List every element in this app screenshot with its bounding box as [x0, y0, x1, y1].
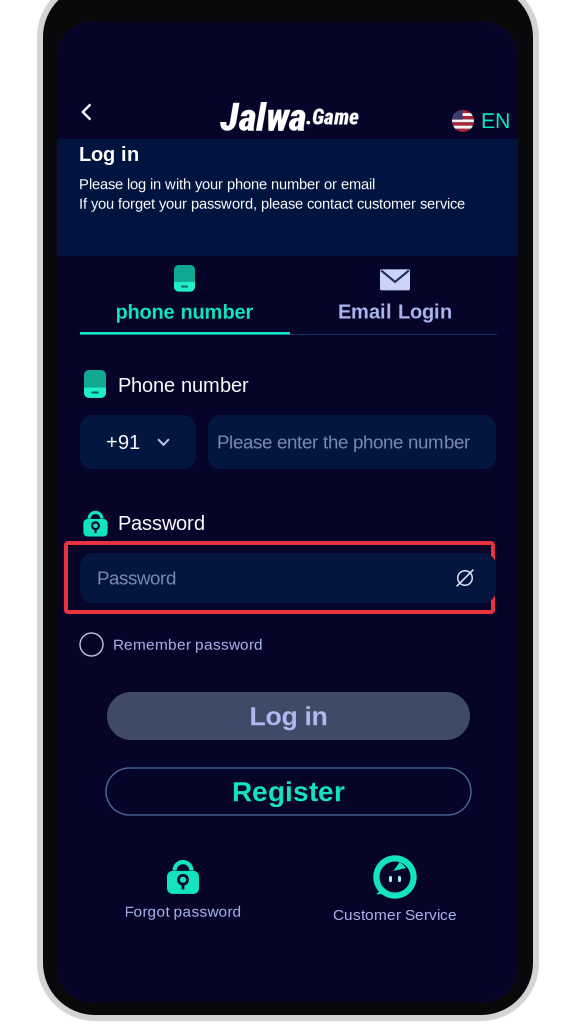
staticText: Log in [249, 701, 327, 731]
button[interactable]: +91 [80, 415, 196, 469]
staticText: .Game [306, 105, 359, 130]
staticText: Jalwa [220, 95, 306, 140]
staticText: EN [481, 109, 510, 133]
staticText: +91 [106, 431, 140, 453]
button[interactable]: phone number [68, 248, 301, 330]
staticText: Please enter the phone number [217, 432, 470, 452]
staticText: Password [118, 512, 205, 534]
staticText: Customer Service [333, 906, 457, 923]
button[interactable]: Customer Service [315, 857, 475, 923]
staticText: Password [97, 568, 176, 588]
button[interactable]: EN [442, 101, 520, 141]
staticText: Remember password [113, 636, 263, 653]
staticText: Phone number [118, 374, 249, 396]
button[interactable]: Log in [107, 692, 470, 740]
staticText: Forgot password [124, 903, 241, 920]
staticText: Please log in with your phone number or … [79, 176, 375, 192]
staticText: If you forget your password, please cont… [79, 195, 465, 212]
button[interactable]: Remember password [74, 626, 269, 663]
button[interactable]: Back [69, 91, 104, 133]
button[interactable]: Forgot password [103, 855, 263, 920]
staticText: Log in [79, 143, 139, 165]
staticText: phone number [115, 301, 253, 323]
button[interactable]: Register [106, 768, 471, 815]
staticText: Register [232, 776, 345, 807]
button[interactable]: Password [80, 553, 496, 603]
staticText: Email Login [338, 300, 452, 323]
button[interactable]: Email Login [281, 248, 509, 330]
button[interactable]: Please enter the phone number [208, 415, 496, 469]
